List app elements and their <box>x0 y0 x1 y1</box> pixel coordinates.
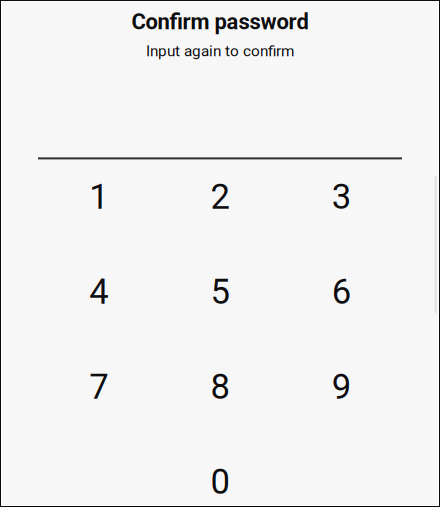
staticText: 0 <box>210 461 229 502</box>
button[interactable]: 8 <box>159 339 281 434</box>
staticText: 8 <box>210 366 229 407</box>
button[interactable]: 9 <box>281 339 402 434</box>
staticText: 4 <box>89 271 108 312</box>
button[interactable]: 7 <box>38 339 159 434</box>
staticText: 6 <box>332 271 351 312</box>
staticText: Confirm password <box>131 9 308 35</box>
button[interactable]: 5 <box>159 244 281 339</box>
button[interactable]: 4 <box>38 244 159 339</box>
staticText: 9 <box>332 366 351 407</box>
staticText: Input again to confirm <box>146 42 294 60</box>
staticText: 2 <box>210 176 229 217</box>
staticText: 7 <box>89 366 108 407</box>
button[interactable]: 0 <box>159 434 281 507</box>
staticText: 3 <box>332 176 351 217</box>
staticText: 1 <box>89 176 108 217</box>
button[interactable]: 2 <box>159 149 281 244</box>
button[interactable]: 3 <box>281 149 402 244</box>
staticText: 5 <box>210 271 229 312</box>
button[interactable]: 1 <box>38 149 159 244</box>
button[interactable]: 6 <box>281 244 402 339</box>
